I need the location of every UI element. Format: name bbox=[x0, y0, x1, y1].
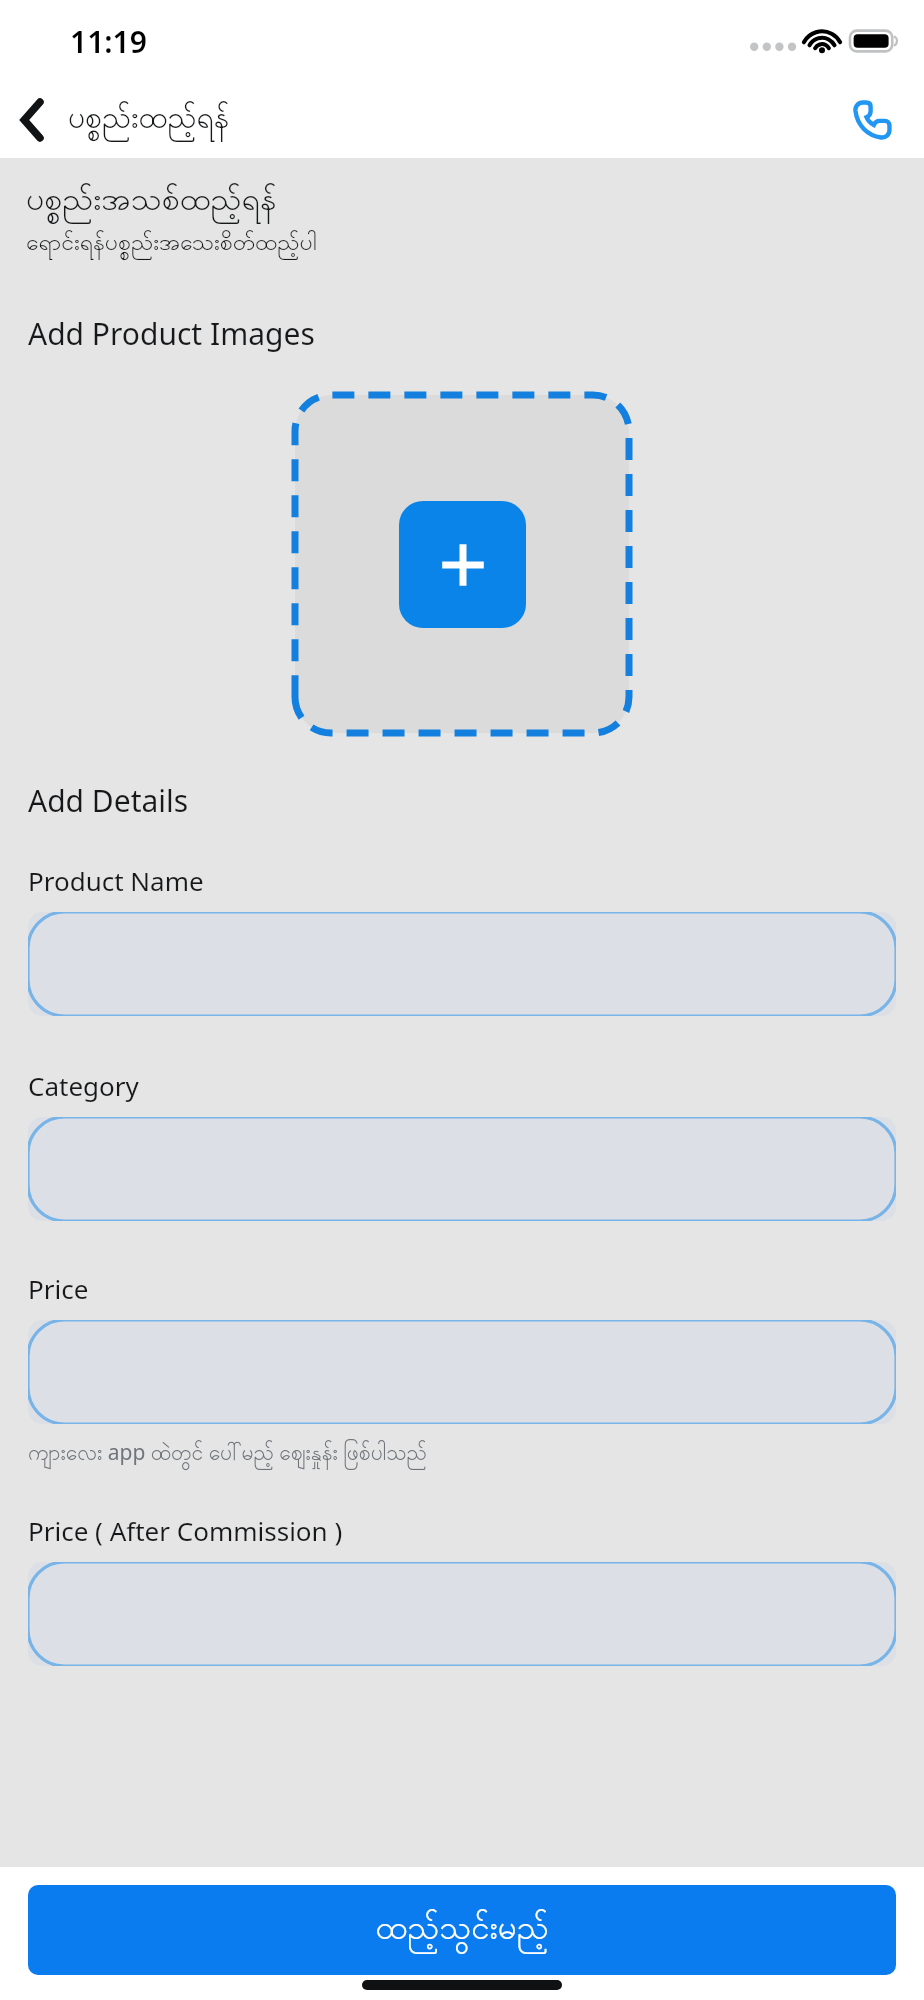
button[interactable]: Back bbox=[0, 87, 66, 153]
staticText: Add Details bbox=[28, 780, 189, 821]
staticText: ကျားလေး app ထဲတွင် ပေါ်မည့် ဈေးနှုန်း ဖြ… bbox=[28, 1438, 427, 1471]
staticText: ပစ္စည်းအသစ်ထည့်ရန် bbox=[26, 178, 277, 225]
button[interactable]: Call bbox=[840, 88, 904, 152]
button[interactable] bbox=[28, 912, 896, 1016]
button[interactable]: ထည့်သွင်းမည့် bbox=[28, 1885, 896, 1975]
staticText: Add Product Images bbox=[28, 313, 315, 354]
staticText: Price ( After Commission ) bbox=[28, 1513, 343, 1548]
button[interactable] bbox=[28, 1320, 896, 1424]
staticText: Product Name bbox=[28, 863, 204, 898]
staticText: ရောင်းရန်ပစ္စည်းအသေးစိတ်ထည့်ပါ bbox=[26, 227, 317, 261]
button[interactable] bbox=[28, 1562, 896, 1666]
staticText: Category bbox=[28, 1068, 139, 1103]
staticText: Price bbox=[28, 1271, 89, 1306]
button[interactable] bbox=[28, 1117, 896, 1221]
staticText: 11:19 bbox=[70, 21, 147, 62]
button[interactable]: Add product image bbox=[292, 392, 632, 736]
staticText: ထည့်သွင်းမည့် bbox=[375, 1906, 549, 1955]
staticText: ပစ္စည်းထည့်ရန် bbox=[68, 98, 230, 142]
